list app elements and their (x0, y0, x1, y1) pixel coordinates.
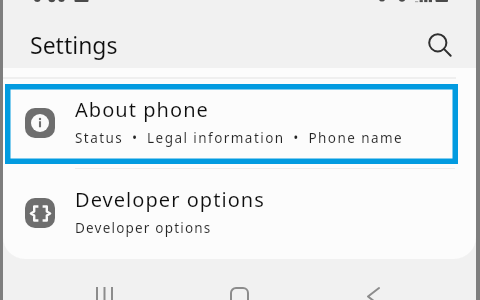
staticText: Developer options (75, 186, 265, 213)
button[interactable]: Search (416, 21, 458, 63)
staticText: Settings (30, 29, 118, 60)
staticText: Status • Legal information • Phone name (75, 129, 404, 147)
button[interactable]: Home (160, 259, 320, 300)
button[interactable]: Recents (0, 259, 160, 300)
staticText: Developer options (75, 219, 212, 237)
button[interactable]: Developer options (5, 169, 457, 247)
button[interactable]: About phone (5, 84, 458, 164)
staticText: About phone (75, 96, 209, 123)
button[interactable]: Back (320, 259, 480, 300)
